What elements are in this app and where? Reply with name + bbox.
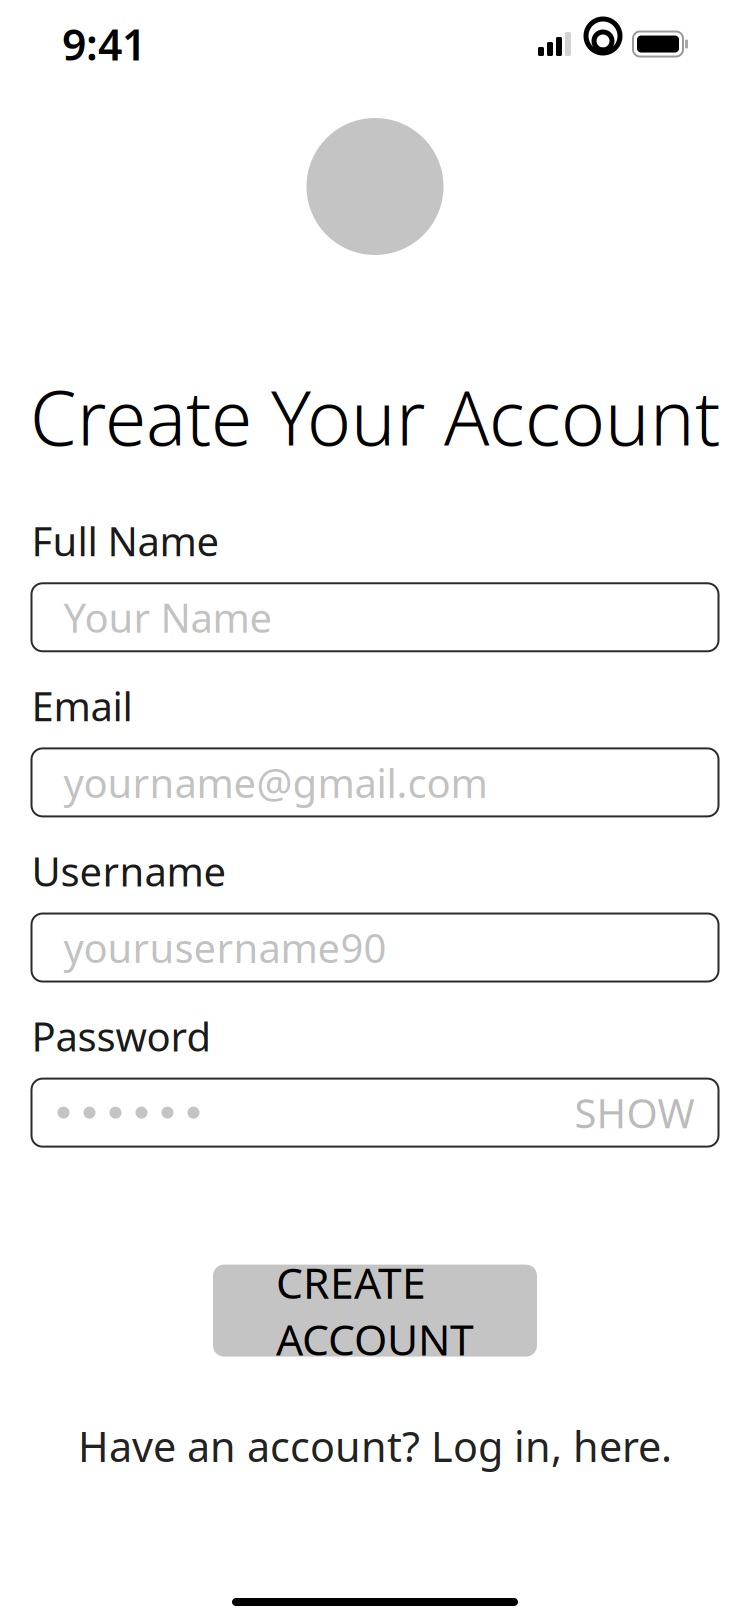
staticText: Email (31, 679, 132, 732)
staticText: CREATE ACCOUNT (276, 1254, 474, 1367)
staticText: SHOW (574, 1086, 694, 1139)
button[interactable]: SHOW (31, 1079, 718, 1147)
staticText: yourusername90 (63, 921, 386, 974)
staticText: Create Your Account (30, 367, 720, 466)
button[interactable]: CREATE ACCOUNT (213, 1265, 537, 1357)
staticText: yourname@gmail.com (63, 756, 487, 809)
staticText: Password (31, 1009, 211, 1063)
staticText: Full Name (31, 514, 219, 567)
staticText: Your Name (63, 591, 272, 644)
button[interactable]: Have an account? Log in, here. (68, 1411, 682, 1481)
button[interactable]: yourname@gmail.com (31, 748, 718, 816)
button[interactable]: yourusername90 (31, 913, 718, 981)
staticText: 9:41 (62, 16, 146, 72)
staticText: Have an account? Log in, here. (78, 1419, 672, 1473)
button[interactable]: Your Name (31, 583, 718, 651)
staticText: Username (31, 844, 226, 897)
